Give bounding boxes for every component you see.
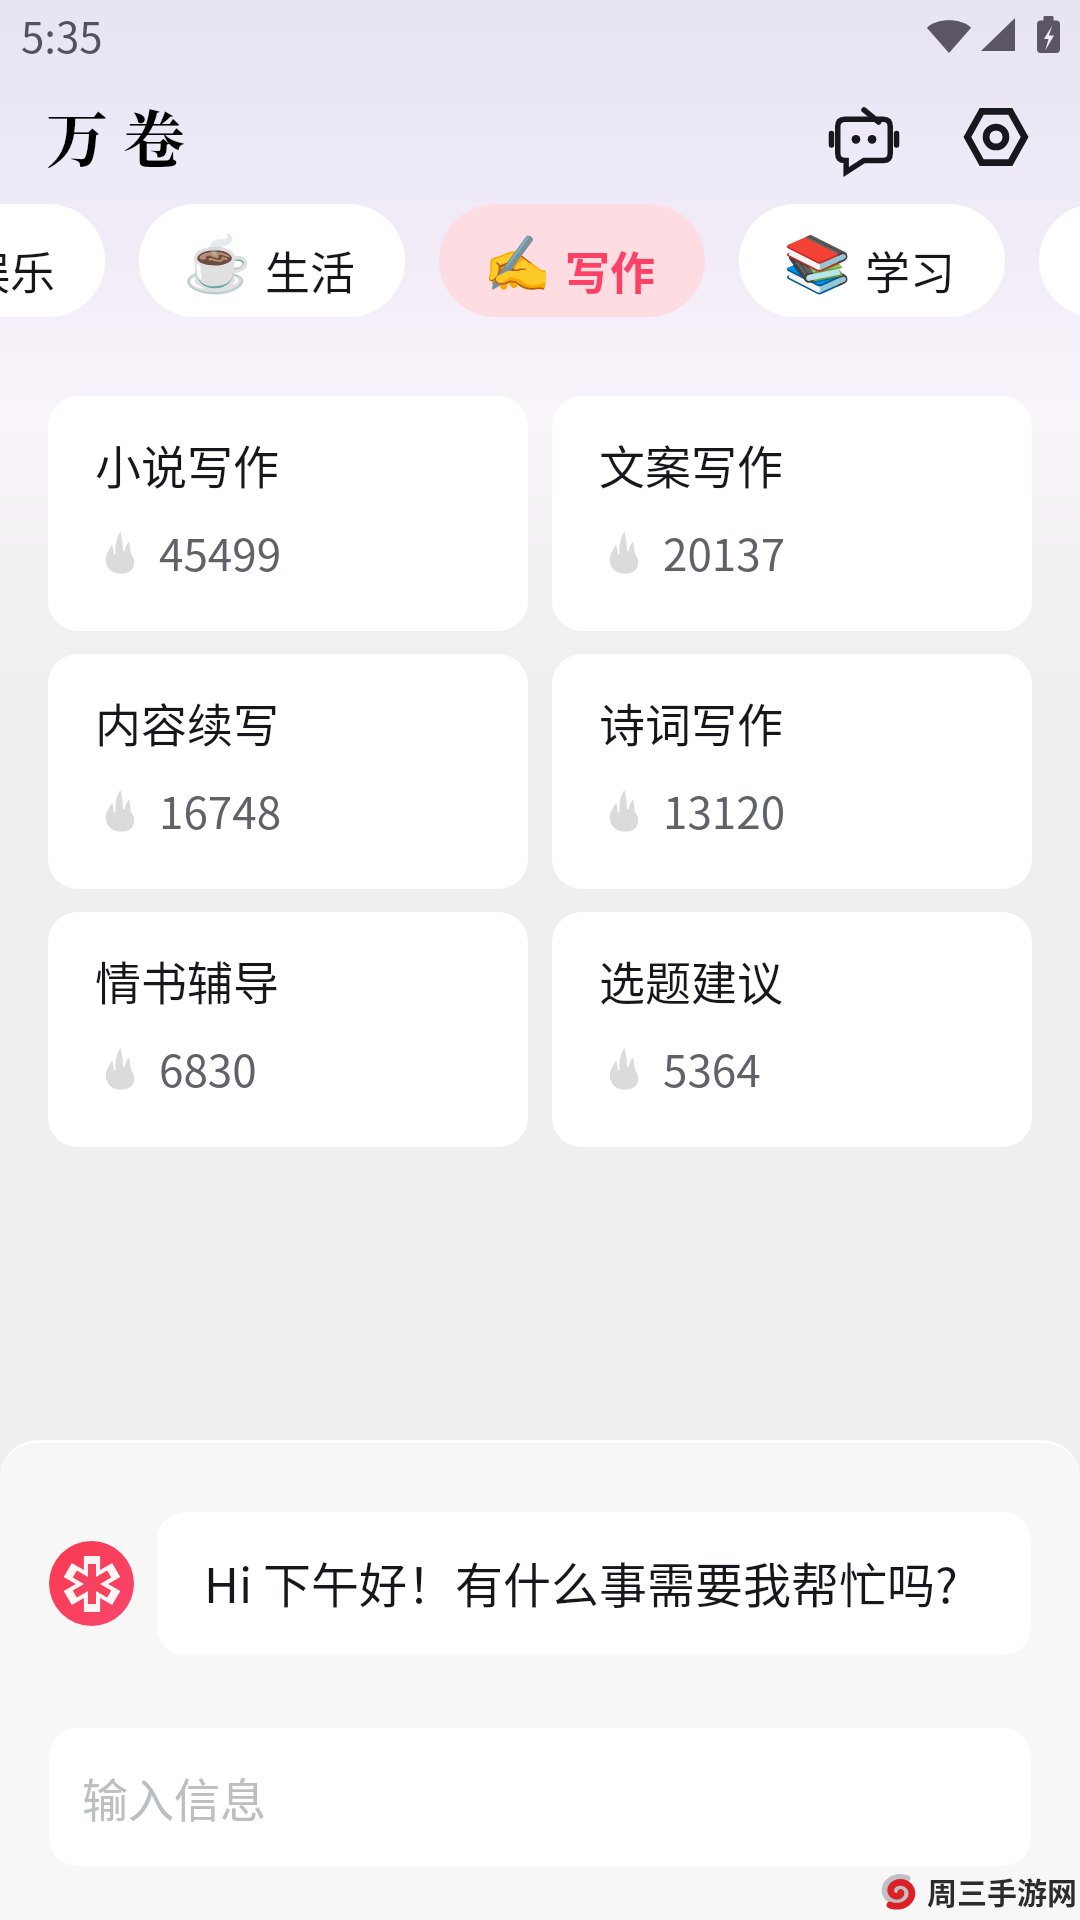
staticText: 内容续写	[95, 689, 279, 756]
button[interactable]: 情书辅导	[48, 912, 528, 1147]
button[interactable]: ✍️	[439, 204, 705, 317]
staticText: 写作	[565, 238, 656, 303]
staticText: 情书辅导	[95, 947, 279, 1014]
button[interactable]: 🎮	[0, 204, 105, 317]
staticText: 6830	[159, 1036, 257, 1100]
staticText: 文案写作	[599, 431, 783, 498]
staticText: 学习	[865, 238, 956, 303]
staticText: 诗词写作	[599, 689, 783, 756]
button[interactable]: 选题建议	[552, 912, 1032, 1147]
staticText: 选题建议	[599, 947, 783, 1014]
staticText: 13120	[663, 778, 786, 842]
staticText: 📚	[783, 232, 852, 296]
button[interactable]: ☕	[139, 204, 405, 317]
staticText: 周三手游网	[927, 1869, 1077, 1912]
button[interactable]: Hi 下午好！有什么事需要我帮忙吗?	[157, 1512, 1031, 1655]
staticText: 16748	[159, 778, 282, 842]
staticText: 娱乐	[0, 238, 56, 303]
staticText: Hi 下午好！有什么事需要我帮忙吗?	[204, 1547, 958, 1617]
button[interactable]: 内容续写	[48, 654, 528, 889]
button[interactable]: 文案写作	[552, 396, 1032, 631]
staticText: 小说写作	[95, 431, 279, 498]
staticText: 输入信息	[82, 1764, 266, 1831]
staticText: 5364	[663, 1036, 761, 1100]
button[interactable]: Assistant avatar	[49, 1541, 134, 1626]
button[interactable]: 诗词写作	[552, 654, 1032, 889]
button[interactable]: 输入信息	[49, 1728, 1031, 1866]
button[interactable]: 📚	[739, 204, 1005, 317]
staticText: 5:35	[21, 4, 103, 65]
button[interactable]: AI assistant	[817, 93, 911, 187]
staticText: 生活	[265, 238, 356, 303]
staticText: ✍️	[483, 232, 552, 296]
button[interactable]: 小说写作	[48, 396, 528, 631]
staticText: 45499	[159, 520, 282, 584]
staticText: 万卷	[46, 92, 201, 181]
staticText: 20137	[663, 520, 786, 584]
staticText: ☕	[183, 232, 252, 296]
button[interactable]: Settings	[949, 90, 1043, 184]
button[interactable]: 💼	[1039, 204, 1080, 317]
